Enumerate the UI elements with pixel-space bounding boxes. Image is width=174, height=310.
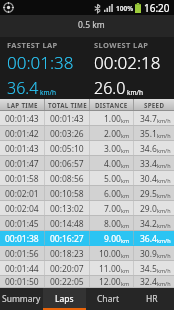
staticText: km/h <box>157 147 171 154</box>
staticText: TOTAL TIME <box>48 101 87 109</box>
staticText: km/h <box>157 117 171 124</box>
staticText: km/h <box>157 280 171 287</box>
staticText: FASTEST LAP <box>7 40 58 50</box>
staticText: km <box>121 280 130 287</box>
staticText: SPEED <box>144 101 165 109</box>
staticText: km <box>121 207 130 214</box>
staticText: 33.4 <box>140 158 157 170</box>
button[interactable]: Summary <box>0 288 43 310</box>
staticText: 32.4 <box>140 276 157 288</box>
button[interactable]: 00:01:56 <box>0 246 174 261</box>
staticText: km/h <box>127 88 143 97</box>
staticText: km <box>121 162 130 169</box>
staticText: 29.5 <box>140 188 157 200</box>
staticText: 00:01:50 <box>5 276 39 288</box>
staticText: km/h <box>157 222 171 229</box>
button[interactable]: 00:01:47 <box>0 156 174 171</box>
button[interactable]: 00:01:45 <box>0 216 174 231</box>
staticText: 35.1 <box>140 128 157 140</box>
staticText: 00:01:43 <box>5 143 39 155</box>
button[interactable]: HR <box>130 288 174 310</box>
staticText: 34.2 <box>140 218 157 230</box>
button[interactable]: 00:01:43 <box>0 111 174 126</box>
staticText: 00:13:02 <box>50 203 84 215</box>
staticText: 9.00 <box>104 233 121 245</box>
staticText: 00:01:44 <box>5 263 39 275</box>
staticText: 10.00 <box>99 248 121 260</box>
button[interactable]: 00:01:50 <box>0 276 174 288</box>
staticText: 36.4 <box>7 77 39 99</box>
staticText: 7.00 <box>104 203 121 215</box>
staticText: km/h <box>157 162 171 169</box>
staticText: km/h <box>157 192 171 199</box>
staticText: km/h <box>40 88 56 97</box>
staticText: DISTANCE <box>95 101 128 109</box>
staticText: 00:02:01 <box>5 188 39 200</box>
staticText: km/h <box>157 252 171 259</box>
staticText: 29.0 <box>140 203 157 215</box>
staticText: km/h <box>157 237 171 244</box>
staticText: 6.00 <box>104 188 121 200</box>
staticText: 00:06:57 <box>50 158 84 170</box>
staticText: 3.00 <box>104 143 121 155</box>
staticText: 30.9 <box>140 248 157 260</box>
staticText: km/h <box>157 207 171 214</box>
staticText: km/h <box>157 132 171 139</box>
staticText: km <box>121 177 130 184</box>
staticText: km <box>121 252 130 259</box>
staticText: 00:08:56 <box>50 173 84 185</box>
staticText: 12.00 <box>99 276 121 288</box>
staticText: 34.7 <box>140 113 157 125</box>
staticText: 00:02:04 <box>5 203 39 215</box>
button[interactable]: 00:01:58 <box>0 171 174 186</box>
staticText: km <box>121 192 130 199</box>
staticText: 30.4 <box>140 173 157 185</box>
staticText: 00:01:56 <box>5 248 39 260</box>
staticText: 100% <box>116 4 134 13</box>
staticText: SLOWEST LAP <box>94 40 149 50</box>
staticText: 00:01:45 <box>5 218 39 230</box>
staticText: 34.5 <box>140 263 157 275</box>
button[interactable]: 00:01:38 <box>0 231 174 246</box>
button[interactable]: 0.5 km <box>8 15 174 37</box>
button[interactable]: 00:02:04 <box>0 201 174 216</box>
staticText: 2.00 <box>104 128 121 140</box>
staticText: 00:02:18 <box>94 51 161 74</box>
staticText: km/h <box>157 177 171 184</box>
button[interactable]: Laps <box>43 288 86 310</box>
staticText: 00:01:38 <box>5 233 39 245</box>
staticText: 1.00 <box>104 113 121 125</box>
staticText: Laps <box>55 293 74 305</box>
staticText: 00:01:43 <box>50 113 84 125</box>
staticText: Summary <box>2 293 41 305</box>
button[interactable]: 00:01:42 <box>0 126 174 141</box>
staticText: 00:03:26 <box>50 128 84 140</box>
staticText: HR <box>146 293 158 305</box>
staticText: 00:16:27 <box>50 233 84 245</box>
staticText: km <box>121 222 130 229</box>
staticText: 26.0 <box>94 77 126 99</box>
staticText: 8.00 <box>104 218 121 230</box>
staticText: 00:01:58 <box>5 173 39 185</box>
staticText: 00:01:43 <box>5 113 39 125</box>
button[interactable]: Chart <box>86 288 130 310</box>
staticText: km <box>121 132 130 139</box>
staticText: LAP TIME <box>7 101 38 109</box>
staticText: 00:05:10 <box>50 143 84 155</box>
staticText: 16:20 <box>144 1 170 15</box>
staticText: 4.00 <box>104 158 121 170</box>
staticText: 00:10:58 <box>50 188 84 200</box>
staticText: km <box>121 117 130 124</box>
button[interactable]: 00:02:01 <box>0 186 174 201</box>
staticText: 00:14:48 <box>50 218 84 230</box>
staticText: km <box>121 237 130 244</box>
staticText: Chart <box>97 293 119 305</box>
staticText: km <box>121 267 130 274</box>
staticText: 11.00 <box>99 263 121 275</box>
staticText: 34.6 <box>140 143 157 155</box>
button[interactable]: 00:01:43 <box>0 141 174 156</box>
button[interactable]: 00:01:44 <box>0 261 174 276</box>
staticText: 00:20:07 <box>50 263 84 275</box>
staticText: 5.00 <box>104 173 121 185</box>
staticText: 36.4 <box>140 233 157 245</box>
